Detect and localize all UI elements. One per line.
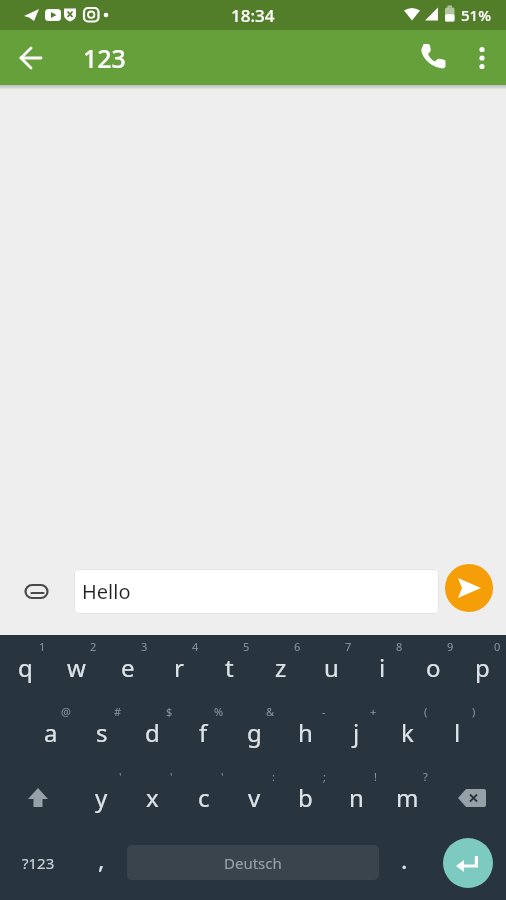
staticText: 0 (494, 639, 501, 654)
staticText: d (145, 716, 160, 749)
staticText: - (322, 704, 326, 719)
staticText: t (225, 651, 234, 684)
button[interactable]: o (408, 635, 459, 700)
button[interactable]: h (280, 700, 331, 765)
button[interactable]: ?123 (0, 830, 76, 895)
button[interactable]: a (25, 700, 76, 765)
staticText: 18:34 (231, 4, 275, 27)
staticText: 6 (294, 639, 301, 654)
staticText: + (370, 704, 377, 719)
button[interactable]: y (76, 765, 127, 830)
staticText: a (44, 716, 58, 749)
staticText: ?123 (22, 853, 55, 873)
staticText: l (454, 716, 461, 749)
button[interactable] (445, 564, 493, 612)
button[interactable] (433, 765, 506, 830)
staticText: @ (61, 704, 71, 719)
button[interactable]: k (382, 700, 433, 765)
staticText: b (298, 781, 313, 814)
button[interactable]: b (280, 765, 331, 830)
staticText: r (174, 651, 184, 684)
staticText: . (401, 843, 408, 876)
staticText: Hello (82, 578, 131, 605)
staticText: m (396, 781, 419, 814)
staticText: % (214, 704, 224, 719)
button[interactable]: v (229, 765, 280, 830)
button[interactable]: z (255, 635, 306, 700)
button[interactable]: i (357, 635, 408, 700)
staticText: k (401, 716, 414, 749)
staticText: 4 (192, 639, 199, 654)
staticText: 7 (345, 639, 352, 654)
button[interactable] (0, 765, 76, 830)
staticText: p (475, 651, 490, 684)
button[interactable]: Deutsch (127, 845, 379, 880)
button[interactable]: g (229, 700, 280, 765)
staticText: g (247, 716, 262, 749)
staticText: i (379, 651, 386, 684)
staticText: v (248, 781, 261, 814)
staticText: o (426, 651, 441, 684)
button[interactable]: e (102, 635, 153, 700)
button[interactable]: u (306, 635, 357, 700)
staticText: 51% (461, 5, 491, 25)
button[interactable]: r (153, 635, 204, 700)
staticText: 9 (447, 639, 454, 654)
staticText: $ (166, 704, 173, 719)
staticText: y (95, 781, 108, 814)
staticText: z (275, 651, 287, 684)
staticText: n (349, 781, 364, 814)
button[interactable]: , (76, 830, 127, 895)
button[interactable]: Hello (74, 569, 439, 614)
staticText: 1 (39, 639, 46, 654)
staticText: ' (119, 769, 122, 784)
staticText: w (67, 651, 86, 684)
staticText: 123 (83, 41, 126, 75)
staticText: 8 (396, 639, 403, 654)
button[interactable] (8, 35, 54, 81)
staticText: ; (323, 769, 326, 784)
staticText: & (266, 704, 275, 719)
staticText: ( (424, 704, 428, 719)
button[interactable]: f (178, 700, 229, 765)
button[interactable]: j (331, 700, 382, 765)
button[interactable] (410, 34, 458, 82)
button[interactable]: d (127, 700, 178, 765)
staticText: : (272, 769, 275, 784)
staticText: q (18, 651, 33, 684)
button[interactable] (20, 575, 53, 608)
staticText: u (324, 651, 339, 684)
button[interactable]: t (204, 635, 255, 700)
button[interactable]: l (433, 700, 481, 765)
staticText: 5 (243, 639, 250, 654)
staticText: ' (170, 769, 173, 784)
button[interactable]: p (459, 635, 506, 700)
staticText: 2 (90, 639, 97, 654)
staticText: f (199, 716, 208, 749)
staticText: ! (374, 769, 377, 784)
staticText: , (98, 843, 105, 876)
staticText: ) (472, 704, 476, 719)
staticText: ' (221, 769, 224, 784)
button[interactable]: s (76, 700, 127, 765)
button[interactable]: q (0, 635, 51, 700)
button[interactable]: x (127, 765, 178, 830)
staticText: j (353, 716, 360, 749)
staticText: # (114, 704, 122, 719)
staticText: 3 (141, 639, 148, 654)
staticText: x (146, 781, 159, 814)
button[interactable]: n (331, 765, 382, 830)
staticText: ? (423, 769, 428, 784)
button[interactable]: . (379, 830, 430, 895)
button[interactable] (458, 34, 506, 82)
button[interactable] (443, 838, 493, 888)
staticText: h (298, 716, 313, 749)
button[interactable]: w (51, 635, 102, 700)
button[interactable]: c (178, 765, 229, 830)
staticText: Deutsch (224, 853, 282, 873)
staticText: e (121, 651, 135, 684)
staticText: s (96, 716, 108, 749)
button[interactable]: m (382, 765, 433, 830)
staticText: c (198, 781, 210, 814)
